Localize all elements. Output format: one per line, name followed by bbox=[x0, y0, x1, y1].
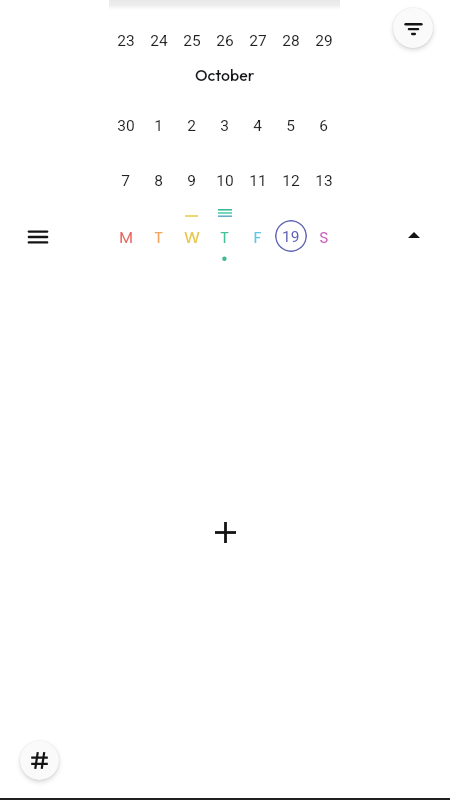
staticText: 2 bbox=[187, 117, 196, 135]
staticText: October bbox=[195, 65, 255, 85]
button[interactable]: 11 bbox=[241, 169, 274, 193]
staticText: 30 bbox=[117, 117, 135, 135]
button[interactable]: 23 bbox=[109, 29, 142, 53]
button[interactable]: 28 bbox=[274, 29, 307, 53]
button[interactable]: T bbox=[208, 225, 241, 249]
staticText: S bbox=[319, 226, 329, 248]
button[interactable]: Collapse month view bbox=[393, 214, 434, 255]
staticText: 3 bbox=[220, 117, 229, 135]
button[interactable]: 27 bbox=[241, 29, 274, 53]
button[interactable]: 24 bbox=[142, 29, 175, 53]
staticText: 7 bbox=[121, 172, 130, 190]
button[interactable]: 12 bbox=[274, 169, 307, 193]
staticText: 28 bbox=[282, 32, 300, 50]
button[interactable]: 26 bbox=[208, 29, 241, 53]
staticText: 10 bbox=[216, 172, 234, 190]
staticText: 29 bbox=[315, 32, 333, 50]
button[interactable]: T bbox=[142, 225, 175, 249]
button[interactable]: 19 bbox=[275, 220, 307, 252]
button[interactable]: S bbox=[307, 225, 340, 249]
staticText: M bbox=[119, 226, 133, 248]
staticText: F bbox=[253, 226, 262, 248]
button[interactable]: 10 bbox=[208, 169, 241, 193]
staticText: 6 bbox=[319, 117, 328, 135]
button[interactable]: M bbox=[109, 225, 142, 249]
staticText: 27 bbox=[249, 32, 267, 50]
staticText: T bbox=[154, 226, 163, 248]
staticText: 9 bbox=[187, 172, 196, 190]
button[interactable]: 25 bbox=[175, 29, 208, 53]
button[interactable]: 8 bbox=[142, 169, 175, 193]
button[interactable]: Add event bbox=[205, 512, 245, 552]
button[interactable]: Open navigation menu bbox=[17, 216, 58, 257]
button[interactable]: 30 bbox=[109, 114, 142, 138]
staticText: 8 bbox=[154, 172, 163, 190]
staticText: 1 bbox=[154, 117, 163, 135]
button[interactable]: Tags bbox=[20, 741, 59, 780]
staticText: T bbox=[220, 226, 229, 248]
button[interactable]: 13 bbox=[307, 169, 340, 193]
staticText: 19 bbox=[282, 228, 300, 246]
staticText: 4 bbox=[253, 117, 262, 135]
button[interactable]: F bbox=[241, 225, 274, 249]
button[interactable]: 2 bbox=[175, 114, 208, 138]
button[interactable]: 6 bbox=[307, 114, 340, 138]
staticText: 23 bbox=[117, 32, 135, 50]
staticText: 5 bbox=[286, 117, 295, 135]
button[interactable]: 4 bbox=[241, 114, 274, 138]
button[interactable]: 1 bbox=[142, 114, 175, 138]
button[interactable]: October bbox=[0, 62, 450, 88]
button[interactable]: 7 bbox=[109, 169, 142, 193]
staticText: 11 bbox=[249, 172, 267, 190]
button[interactable]: 3 bbox=[208, 114, 241, 138]
staticText: W bbox=[184, 226, 200, 248]
button[interactable]: 9 bbox=[175, 169, 208, 193]
button[interactable]: Filter bbox=[393, 8, 433, 48]
button[interactable]: 5 bbox=[274, 114, 307, 138]
staticText: 25 bbox=[183, 32, 201, 50]
staticText: 13 bbox=[315, 172, 333, 190]
staticText: 24 bbox=[150, 32, 168, 50]
button[interactable]: W bbox=[175, 225, 208, 249]
staticText: 26 bbox=[216, 32, 234, 50]
button[interactable]: 29 bbox=[307, 29, 340, 53]
staticText: 12 bbox=[282, 172, 300, 190]
